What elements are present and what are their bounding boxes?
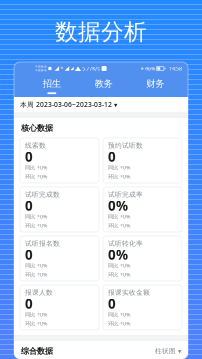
staticText: 线索数 [25,141,46,150]
staticText: 环比 +0% [108,222,130,229]
button[interactable]: 财务 [129,78,181,94]
staticText: 招生 [43,78,61,89]
staticText: 柱状图 ▾ [155,347,181,355]
staticText: 数据分析 [55,18,147,46]
button[interactable]: 试听完成率 [103,187,182,232]
staticText: 同比 +0% [25,262,47,269]
button[interactable]: 试听报名数 [20,236,99,281]
staticText: * [60,65,63,72]
staticText: 0 [25,295,33,312]
staticText: 0 [25,148,33,165]
staticText: 同比 +0% [108,311,130,318]
button[interactable]: 柱状图 ▾ [155,347,181,355]
staticText: 0% [108,246,128,263]
staticText: 核心数据 [21,123,53,133]
staticText: 14:58 [169,65,182,72]
staticText: 环比 +0% [25,222,47,229]
staticText: 教务 [94,78,112,89]
staticText: ⚹ [141,66,144,71]
staticText: 综合数据 [21,346,53,356]
staticText: 同比 +0% [25,164,47,171]
staticText: 环比 +0% [25,271,47,278]
staticText: 报课实收金额 [108,288,150,297]
staticText: 试听完成率 [108,190,143,199]
staticText: 环比 +0% [108,173,130,180]
staticText: 试听报名数 [25,239,60,248]
staticText: 同比 +0% [108,262,130,269]
staticText: 环比 +0% [25,320,47,327]
staticText: 试听转化率 [108,239,143,248]
staticText: 报课人数 [25,288,53,297]
button[interactable]: 线索数 [20,138,99,183]
button[interactable]: 试听转化率 [103,236,182,281]
staticText: 同比 +0% [108,164,130,171]
staticText: 5.77K/s [82,65,100,72]
staticText: 0 [108,148,116,165]
button[interactable]: 预约试听数 [103,138,182,183]
button[interactable]: 教务 [78,78,129,94]
staticText: 环比 +0% [25,173,47,180]
staticText: 环比 +0% [108,271,130,278]
staticText: 试听完成数 [25,190,60,199]
staticText: 0 [25,246,33,263]
button[interactable]: 试听完成数 [20,187,99,232]
staticText: 0 [25,197,33,214]
button[interactable]: 本周 2023-03-06~2023-03-12 ▾ [14,97,188,112]
button[interactable]: 招生 [26,78,78,94]
staticText: 同比 +0% [25,213,47,220]
button[interactable]: 报课人数 [20,285,99,330]
staticText: 中国移动 [35,65,47,68]
staticText: 预约试听数 [108,141,143,150]
button[interactable]: 报课实收金额 [103,285,182,330]
staticText: 环比 +0% [108,320,130,327]
staticText: 本周 2023-03-06~2023-03-12 ▾ [20,100,117,109]
staticText: 同比 +0% [25,311,47,318]
staticText: 0% [108,197,128,214]
staticText: 同比 +0% [108,213,130,220]
staticText: 财务 [146,78,164,89]
staticText: 中国移动 [35,69,47,72]
staticText: 46% [145,65,155,72]
staticText: 0 [108,295,116,312]
